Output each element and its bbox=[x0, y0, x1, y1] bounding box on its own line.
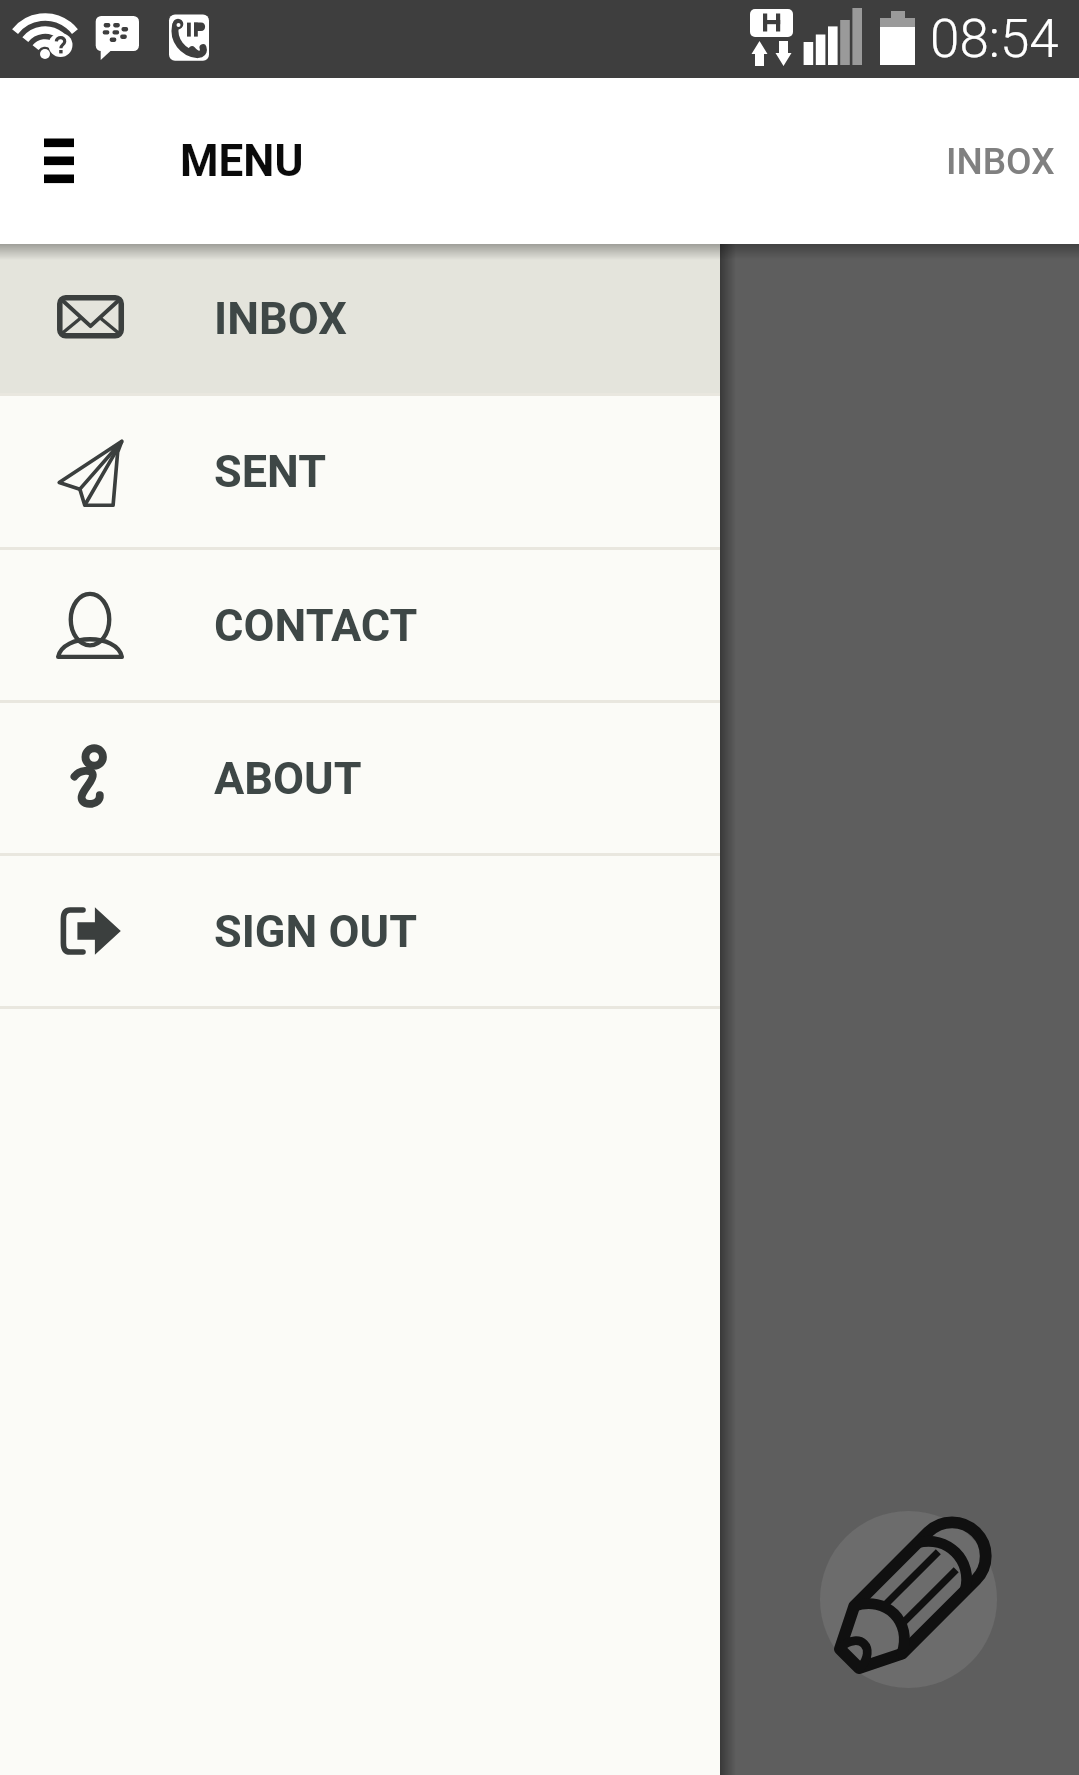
staticText: SIGN OUT bbox=[214, 905, 417, 958]
button[interactable]: ABOUT bbox=[0, 703, 720, 853]
staticText: INBOX bbox=[946, 140, 1055, 183]
button[interactable]: INBOX bbox=[0, 244, 720, 393]
staticText: MENU bbox=[180, 135, 304, 187]
staticText: 08:54 bbox=[930, 8, 1059, 70]
button[interactable]: SENT bbox=[0, 396, 720, 547]
button[interactable]: INBOX bbox=[906, 110, 1079, 213]
staticText: ABOUT bbox=[214, 752, 362, 805]
button[interactable]: Compose message bbox=[820, 1511, 997, 1688]
button[interactable]: CONTACT bbox=[0, 550, 720, 700]
staticText: SENT bbox=[214, 445, 326, 498]
staticText: INBOX bbox=[214, 292, 347, 345]
button[interactable]: SIGN OUT bbox=[0, 856, 720, 1006]
button[interactable]: Open navigation menu bbox=[18, 106, 100, 216]
staticText: CONTACT bbox=[214, 599, 418, 652]
